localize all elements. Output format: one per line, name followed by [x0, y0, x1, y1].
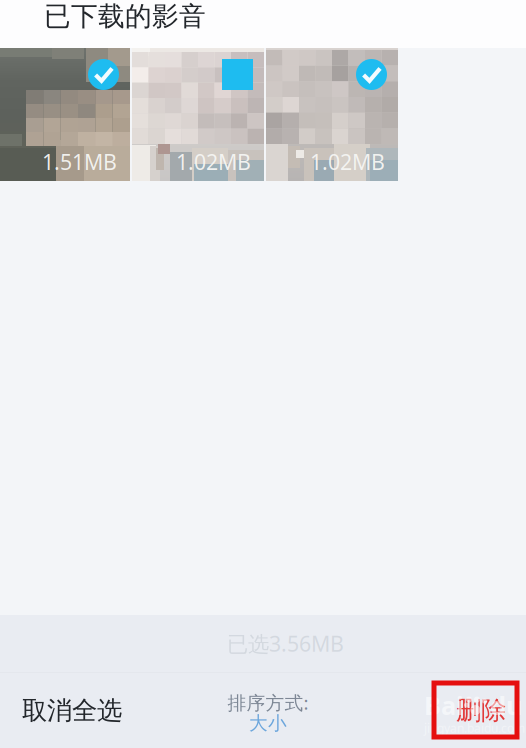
staticText: 已选3.56MB — [227, 629, 344, 658]
staticText: 取消全选 — [22, 695, 122, 726]
staticText: 1.02MB — [310, 148, 385, 176]
button[interactable]: Deselect 1.02MB item — [356, 59, 387, 90]
button[interactable]: 删除 — [440, 673, 522, 748]
button[interactable]: 取消全选 — [0, 673, 144, 748]
staticText: 排序方式: — [227, 690, 308, 715]
staticText: 大小 — [249, 712, 287, 735]
staticText: jingyan.baidu.com — [424, 720, 525, 736]
staticText: 已下载的影音 — [44, 0, 206, 33]
button[interactable]: Deselect 1.51MB item — [88, 59, 119, 90]
staticText: Bai — [424, 688, 464, 722]
button[interactable]: 排序方式: — [206, 673, 330, 748]
staticText: du — [490, 688, 522, 722]
staticText: 1.51MB — [42, 148, 117, 176]
staticText: 删除 — [456, 695, 506, 726]
staticText: 1.02MB — [176, 148, 251, 176]
